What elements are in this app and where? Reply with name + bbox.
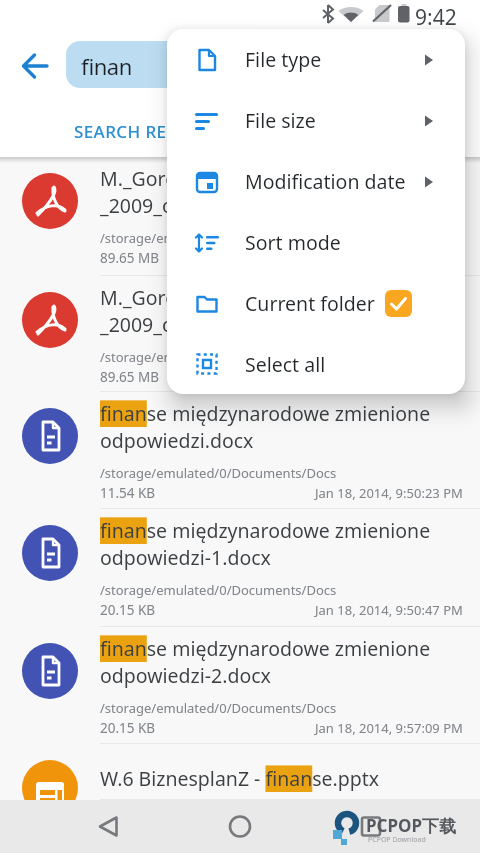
button[interactable]: M._Gorczynska_Finanse_mi _2009_odpowiedz…: [0, 276, 480, 392]
staticText: finan: [81, 51, 132, 81]
staticText: 89.65 MB: [100, 249, 160, 267]
staticText: 20.15 KB: [100, 601, 156, 619]
staticText: Current folder: [245, 290, 375, 317]
button[interactable]: W.6 BiznesplanZ - finanse.pptx: [0, 744, 480, 800]
staticText: PCPOP Download: [368, 835, 426, 845]
button[interactable]: File size: [167, 90, 465, 151]
staticText: W.6 BiznesplanZ - finanse.pptx: [100, 765, 472, 792]
staticText: Jan 18, 2014, 9:57:09 PM: [315, 719, 463, 737]
staticText: finanse międzynarodowe zmienione odpowie…: [100, 635, 472, 689]
staticText: Select all: [245, 351, 326, 378]
staticText: /storage/emulated/0/Documents/Docs: [100, 699, 337, 717]
button[interactable]: M._Gorczynska_Finanse_mi _2009_odpowiedz…: [0, 157, 480, 276]
staticText: PCPOP下载: [366, 814, 457, 837]
button[interactable]: finanse międzynarodowe zmienione odpowie…: [0, 392, 480, 509]
staticText: 9:42: [415, 3, 457, 32]
button[interactable]: finanse międzynarodowe zmienione odpowie…: [0, 627, 480, 744]
staticText: finanse międzynarodowe zmienione odpowie…: [100, 517, 472, 571]
staticText: 20.15 KB: [100, 719, 156, 737]
staticText: File type: [245, 46, 322, 73]
staticText: 89.65 MB: [100, 368, 160, 386]
staticText: Sort mode: [245, 229, 341, 256]
staticText: 11.54 KB: [100, 484, 156, 502]
button[interactable]: Current folder: [167, 273, 465, 334]
staticText: Jan 18, 2014, 9:50:23 PM: [315, 484, 463, 502]
staticText: /storage/emulated/0/Download: [100, 229, 294, 247]
staticText: Jan 18, 2014, 9:50:47 PM: [315, 601, 463, 619]
staticText: Jan 11, 2014, 3:21:10 PM: [315, 249, 463, 267]
staticText: SEARCH RESULTS: [74, 120, 218, 143]
staticText: finanse międzynarodowe zmienione odpowie…: [100, 400, 472, 454]
button[interactable]: [14, 45, 56, 87]
staticText: M._Gorczynska_Finanse_mi _2009_odpowiedz…: [100, 284, 472, 338]
button[interactable]: Sort mode: [167, 212, 465, 273]
button[interactable]: finanse międzynarodowe zmienione odpowie…: [0, 509, 480, 627]
staticText: /storage/emulated/0/Documents/Docs: [100, 581, 337, 599]
staticText: M._Gorczynska_Finanse_mi _2009_odpowiedz…: [100, 165, 472, 219]
button[interactable]: File type: [167, 29, 465, 90]
staticText: /storage/emulated/0/Documents/Docs: [100, 464, 337, 482]
button[interactable]: Select all: [167, 334, 465, 394]
button[interactable]: SEARCH RESULTS: [40, 108, 300, 152]
staticText: File size: [245, 107, 316, 134]
staticText: /storage/emulated/0/Download: [100, 348, 294, 366]
button[interactable]: Modification date: [167, 151, 465, 212]
staticText: Modification date: [245, 168, 406, 195]
staticText: Jan 11, 2014, 3:21:10 PM: [315, 368, 463, 386]
